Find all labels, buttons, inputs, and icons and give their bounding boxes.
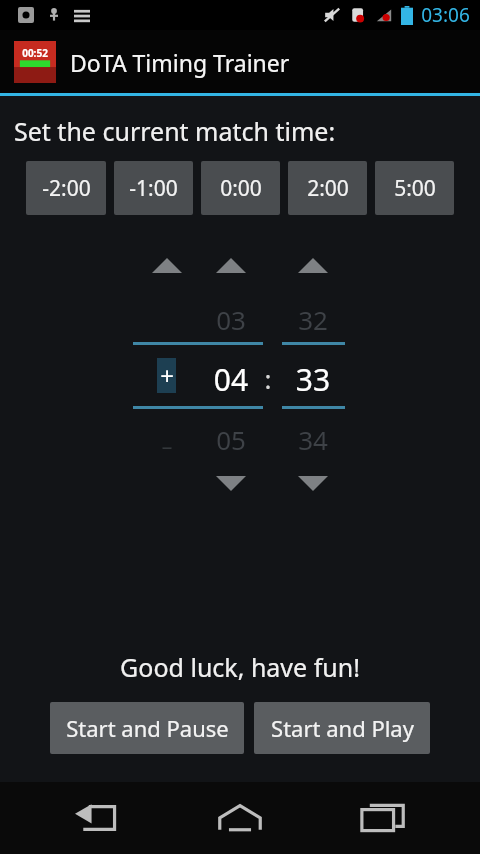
staticText: + (160, 359, 174, 392)
button[interactable]: Back (53, 788, 143, 848)
button[interactable]: Increase minutes (214, 254, 248, 276)
staticText: 05 (206, 422, 256, 457)
staticText: 00:52 (22, 46, 48, 60)
staticText: 0:00 (220, 174, 262, 203)
staticText: 2:00 (307, 174, 349, 203)
staticText: 03:06 (421, 2, 470, 28)
staticText: Good luck, have fun! (120, 650, 360, 684)
button[interactable]: Decrease minutes (214, 472, 248, 494)
button[interactable]: + (157, 358, 176, 393)
staticText: – (152, 430, 182, 460)
staticText: 04 (206, 359, 256, 400)
button[interactable]: -1:00 (114, 161, 193, 215)
staticText: 03 (206, 302, 256, 337)
staticText: Start and Play (271, 713, 414, 743)
staticText: 5:00 (394, 174, 436, 203)
button[interactable]: 0:00 (201, 161, 280, 215)
staticText: Start and Pause (66, 713, 229, 743)
button[interactable]: Increase seconds (296, 254, 330, 276)
staticText: 34 (288, 422, 338, 457)
staticText: -1:00 (129, 174, 178, 203)
staticText: -2:00 (42, 174, 91, 203)
staticText: 32 (288, 302, 338, 337)
staticText: DoTA Timing Trainer (70, 47, 290, 78)
button[interactable]: Decrease seconds (296, 472, 330, 494)
button[interactable]: Start and Pause (50, 702, 244, 754)
button[interactable]: 2:00 (288, 161, 367, 215)
staticText: : (258, 361, 278, 396)
button[interactable]: Recent apps (338, 788, 428, 848)
staticText: 33 (288, 359, 338, 400)
button[interactable]: Start and Play (254, 702, 430, 754)
button[interactable]: 5:00 (375, 161, 454, 215)
staticText: Set the current match time: (14, 114, 336, 148)
button[interactable]: -2:00 (26, 161, 106, 215)
button[interactable]: Home (195, 788, 285, 848)
button[interactable]: Increase sign (150, 254, 184, 276)
